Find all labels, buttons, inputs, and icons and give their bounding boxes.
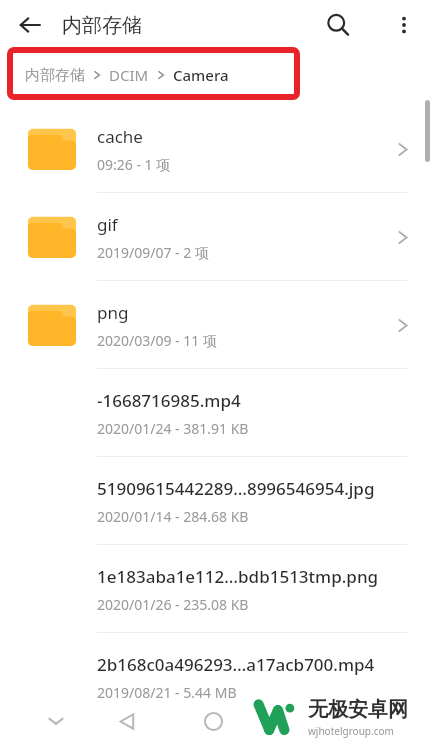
staticText: cache bbox=[97, 125, 143, 148]
staticText: png bbox=[97, 301, 129, 324]
button[interactable]: Hide navigation bar bbox=[34, 699, 78, 743]
staticText: 1e183aba1e112…bdb1513tmp.png bbox=[97, 565, 379, 588]
button[interactable]: 1e183aba1e112…bdb1513tmp.png bbox=[0, 545, 437, 633]
button[interactable]: More options bbox=[383, 4, 425, 46]
staticText: 内部存储 bbox=[25, 66, 85, 85]
staticText: Camera bbox=[173, 65, 229, 85]
staticText: 2020/01/24 - 381.91 KB bbox=[97, 419, 249, 438]
button[interactable]: Back bbox=[10, 5, 50, 45]
staticText: 2020/01/14 - 284.68 KB bbox=[97, 507, 249, 526]
staticText: 09:26 - 1 项 bbox=[97, 155, 171, 174]
staticText: 51909615442289…8996546954.jpg bbox=[97, 477, 375, 500]
button[interactable]: 内部存储 bbox=[25, 65, 229, 85]
button[interactable]: 2b168c0a496293…a17acb700.mp4 bbox=[0, 633, 437, 721]
button[interactable]: gif bbox=[0, 193, 437, 281]
staticText: 2020/03/09 - 11 项 bbox=[97, 331, 217, 350]
button[interactable]: 51909615442289…8996546954.jpg bbox=[0, 457, 437, 545]
button[interactable]: Back bbox=[104, 698, 150, 744]
staticText: DCIM bbox=[109, 65, 149, 85]
staticText: 2019/09/07 - 2 项 bbox=[97, 243, 209, 262]
staticText: 2019/08/21 - 5.44 MB bbox=[97, 683, 237, 702]
staticText: -1668716985.mp4 bbox=[97, 389, 241, 412]
button[interactable]: Home bbox=[190, 698, 236, 744]
staticText: 2020/01/26 - 235.08 KB bbox=[97, 595, 249, 614]
staticText: 无极安卓网 bbox=[308, 697, 408, 722]
button[interactable]: -1668716985.mp4 bbox=[0, 369, 437, 457]
staticText: wjhotelgroup.com bbox=[308, 724, 394, 738]
staticText: 内部存储 bbox=[62, 13, 142, 38]
staticText: gif bbox=[97, 213, 118, 236]
button[interactable]: Search bbox=[317, 4, 359, 46]
button[interactable]: png bbox=[0, 281, 437, 369]
button[interactable]: cache bbox=[0, 105, 437, 193]
staticText: 2b168c0a496293…a17acb700.mp4 bbox=[97, 653, 375, 676]
